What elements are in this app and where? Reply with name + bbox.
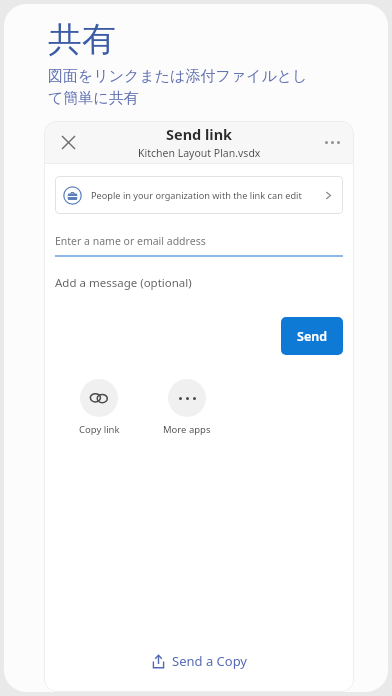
staticText: 図面をリンクまたは添付ファイルとし て簡単に共有 <box>48 67 308 107</box>
staticText: Send a Copy <box>172 652 247 670</box>
staticText: Add a message (optional) <box>55 275 192 291</box>
staticText: Send <box>297 328 327 345</box>
staticText: Kitchen Layout Plan.vsdx <box>138 146 261 160</box>
button[interactable]: Enter a name or email address <box>55 234 343 257</box>
staticText: People in your organization with the lin… <box>91 189 320 202</box>
staticText: Copy link <box>79 423 120 436</box>
button[interactable]: Close <box>50 124 86 160</box>
staticText: 共有 <box>48 18 116 61</box>
button[interactable]: More apps <box>154 377 220 438</box>
staticText: More apps <box>163 423 211 436</box>
button[interactable]: Send <box>281 317 343 355</box>
button[interactable]: Add a message (optional) <box>55 275 343 291</box>
button[interactable]: More options <box>314 124 350 160</box>
staticText: Enter a name or email address <box>55 234 206 248</box>
button[interactable]: Send a Copy <box>139 644 259 678</box>
staticText: Send link <box>166 124 233 144</box>
button[interactable]: People in your organization with the lin… <box>55 176 343 214</box>
button[interactable]: Copy link <box>66 377 132 438</box>
